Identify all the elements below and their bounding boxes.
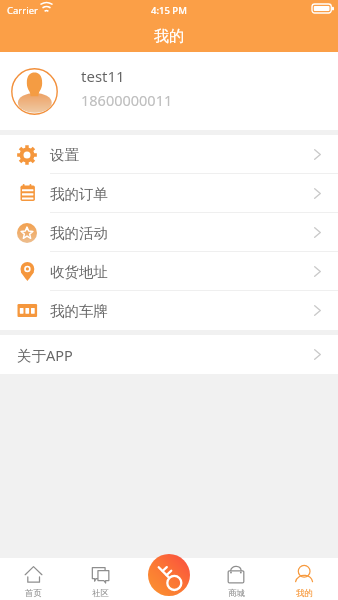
staticText: 商城 — [228, 588, 245, 599]
staticText: 我的 — [154, 27, 184, 46]
staticText: Carrier — [7, 4, 38, 17]
button[interactable]: 我的订单 — [0, 174, 338, 213]
staticText: 收货地址 — [50, 263, 108, 281]
button[interactable]: 我的车牌 — [0, 291, 338, 330]
button[interactable]: 商城 — [202, 558, 270, 600]
staticText: 社区 — [92, 588, 109, 599]
staticText: 设置 — [50, 146, 79, 164]
button[interactable]: 社区 — [67, 558, 134, 600]
staticText: 我的订单 — [50, 185, 108, 203]
button[interactable]: Unlock key — [148, 554, 190, 596]
button[interactable]: test11 — [0, 52, 338, 130]
button[interactable]: 设置 — [0, 135, 338, 174]
button[interactable]: 关于APP — [0, 335, 338, 374]
staticText: 关于APP — [17, 345, 73, 365]
staticText: test11 — [81, 66, 125, 86]
button[interactable]: 我的活动 — [0, 213, 338, 252]
staticText: 我的活动 — [50, 224, 108, 242]
staticText: 首页 — [25, 588, 42, 599]
button[interactable]: 我的 — [270, 558, 338, 600]
staticText: 我的车牌 — [50, 302, 108, 320]
button[interactable]: 收货地址 — [0, 252, 338, 291]
staticText: 我的 — [296, 588, 313, 599]
staticText: 4:15 PM — [151, 4, 187, 17]
button[interactable]: 首页 — [0, 558, 67, 600]
staticText: 18600000011 — [81, 90, 173, 110]
